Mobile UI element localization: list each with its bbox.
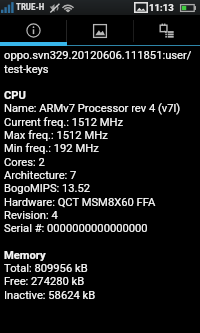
staticText: test-keys	[4, 63, 49, 76]
staticText: Revision: 4	[4, 209, 58, 222]
staticText: Memory	[4, 249, 46, 262]
staticText: Hardware: QCT MSM8X60 FFA	[4, 196, 156, 209]
button[interactable]: Graph tab	[66, 15, 133, 46]
staticText: oppo.svn329.20120606.111851:user/	[4, 49, 192, 62]
staticText: Min freq.: 192 MHz	[4, 142, 99, 155]
staticText: Inactive: 58624 kB	[4, 289, 96, 302]
button[interactable]: List tab	[133, 15, 200, 46]
staticText: CPU	[4, 89, 26, 102]
staticText: 11:13	[149, 2, 174, 13]
staticText: Total: 809956 kB	[4, 262, 88, 275]
staticText: Current freq.: 1512 MHz	[4, 116, 123, 129]
staticText: TRUE-H	[16, 2, 45, 13]
staticText: BogoMIPS: 13.52	[4, 182, 91, 195]
staticText: Cores: 2	[4, 156, 45, 169]
staticText: Free: 274280 kB	[4, 275, 85, 288]
button[interactable]: Info tab	[0, 15, 66, 46]
staticText: Architecture: 7	[4, 169, 77, 182]
staticText: Name: ARMv7 Processor rev 4 (v7l)	[4, 102, 181, 115]
staticText: Serial #: 0000000000000000	[4, 222, 148, 235]
staticText: Max freq.: 1512 MHz	[4, 129, 108, 142]
